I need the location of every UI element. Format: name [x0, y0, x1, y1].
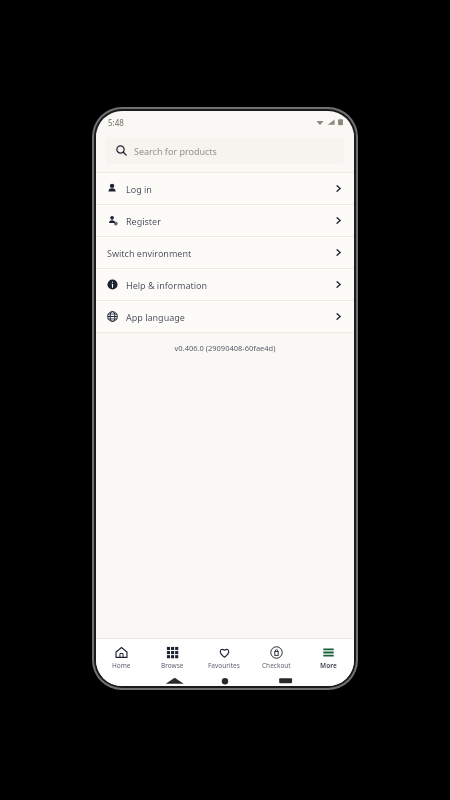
staticText: Register — [126, 215, 161, 227]
staticText: Home — [112, 661, 131, 670]
staticText: 5:48 — [108, 117, 124, 128]
staticText: Switch environment — [107, 247, 192, 259]
button[interactable]: Favourites — [198, 639, 250, 677]
button[interactable]: Browse — [147, 639, 198, 677]
staticText: App language — [126, 311, 185, 323]
button[interactable]: More — [302, 639, 354, 677]
button[interactable]: Checkout — [250, 639, 302, 677]
button[interactable]: Search for products — [106, 137, 344, 164]
button[interactable]: Help & information — [96, 269, 354, 300]
staticText: Browse — [161, 661, 184, 670]
button[interactable]: Log in — [96, 173, 354, 204]
button[interactable]: Register — [96, 205, 354, 236]
staticText: Favourites — [208, 661, 240, 670]
staticText: More — [320, 661, 337, 670]
button[interactable]: Home — [96, 639, 147, 677]
button[interactable]: Switch environment — [96, 237, 354, 268]
staticText: Help & information — [126, 279, 208, 291]
staticText: Search for products — [134, 145, 217, 157]
staticText: Checkout — [262, 661, 291, 670]
staticText: v0.406.0 (29090408-60fae4d) — [96, 343, 354, 353]
staticText: Log in — [126, 183, 152, 195]
button[interactable]: App language — [96, 301, 354, 332]
